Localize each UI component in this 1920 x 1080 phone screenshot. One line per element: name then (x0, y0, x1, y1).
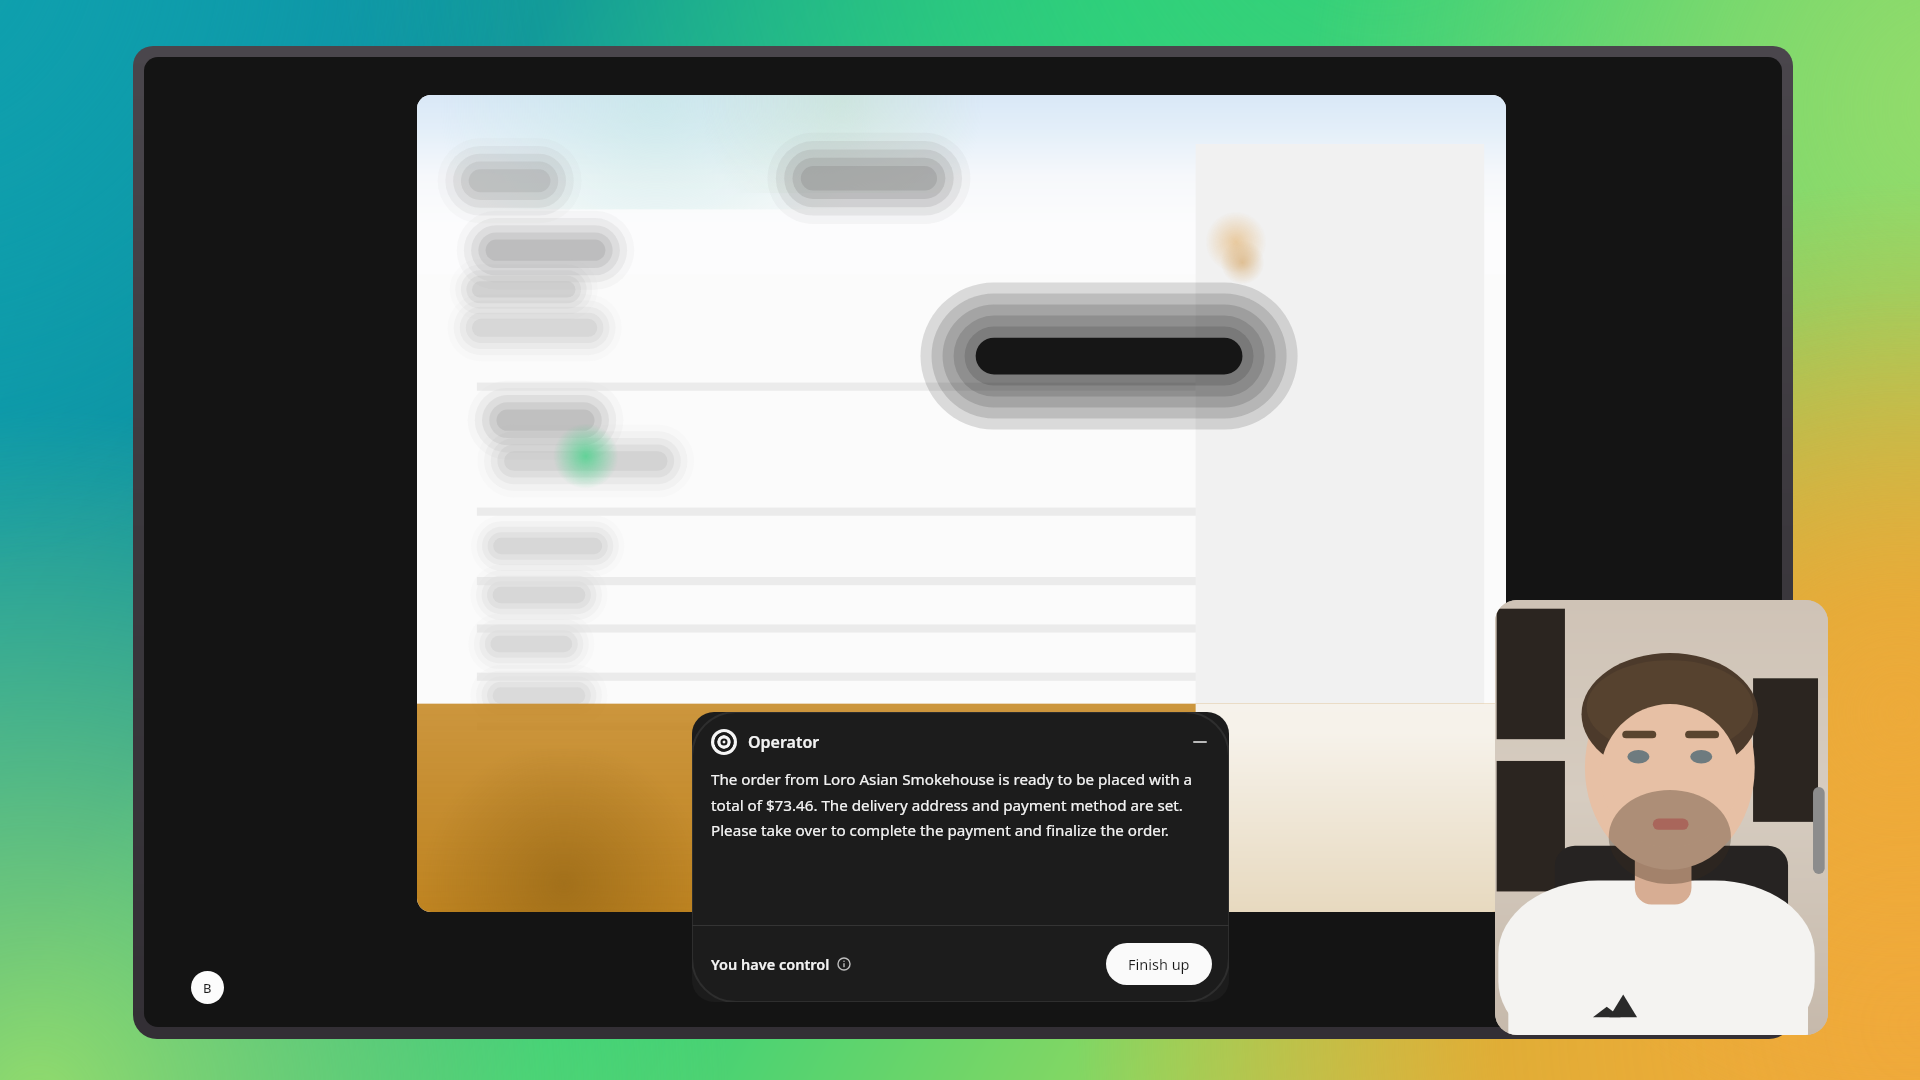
staticText: B (203, 979, 212, 997)
staticText: The order from Loro Asian Smokehouse is … (711, 769, 1207, 840)
button[interactable]: Minimize (1187, 729, 1213, 755)
staticText: Operator (748, 731, 820, 753)
button[interactable]: Account B (191, 971, 224, 1004)
staticText: You have control (711, 954, 830, 974)
staticText: Finish up (1128, 954, 1190, 974)
button[interactable]: Finish up (1106, 943, 1212, 985)
button[interactable]: Webcam video (1495, 600, 1828, 1035)
button[interactable]: You have control (711, 954, 851, 974)
